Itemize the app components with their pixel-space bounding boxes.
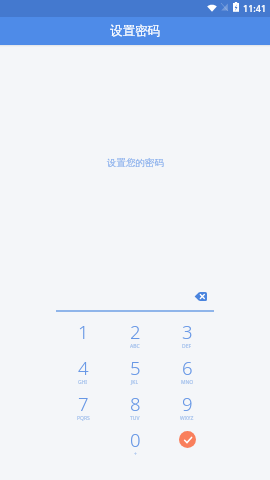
staticText: DEF — [182, 343, 192, 350]
staticText: JKL — [131, 379, 139, 386]
button[interactable]: Delete — [188, 286, 212, 306]
staticText: 3 — [182, 319, 193, 344]
staticText: 8 — [130, 391, 141, 416]
staticText: 1 — [78, 319, 89, 344]
button[interactable]: 8 — [109, 389, 161, 425]
staticText: ABC — [130, 343, 140, 350]
staticText: 7 — [78, 391, 89, 416]
staticText: + — [134, 451, 137, 458]
button[interactable]: 5 — [109, 353, 161, 389]
staticText: WXYZ — [180, 415, 194, 422]
staticText: 9 — [182, 391, 193, 416]
button[interactable]: 7 — [57, 389, 109, 425]
button[interactable]: 3 — [161, 317, 213, 353]
staticText: 6 — [182, 355, 193, 380]
staticText: MNO — [181, 379, 194, 386]
staticText: 11:41 — [243, 2, 267, 14]
button[interactable]: 1 — [57, 317, 109, 353]
staticText: 4 — [78, 355, 89, 380]
button[interactable]: Confirm — [161, 425, 213, 461]
staticText: PQRS — [77, 415, 90, 422]
staticText: TUV — [130, 415, 140, 422]
staticText: GHI — [78, 379, 88, 386]
button[interactable]: 9 — [161, 389, 213, 425]
staticText: 设置密码 — [110, 23, 160, 39]
button[interactable]: 0 — [109, 425, 161, 461]
staticText: 0 — [130, 427, 141, 452]
staticText: 设置您的密码 — [107, 157, 164, 169]
button[interactable]: 2 — [109, 317, 161, 353]
button[interactable]: 4 — [57, 353, 109, 389]
button[interactable]: 6 — [161, 353, 213, 389]
staticText: 5 — [130, 355, 141, 380]
staticText: 2 — [130, 319, 141, 344]
